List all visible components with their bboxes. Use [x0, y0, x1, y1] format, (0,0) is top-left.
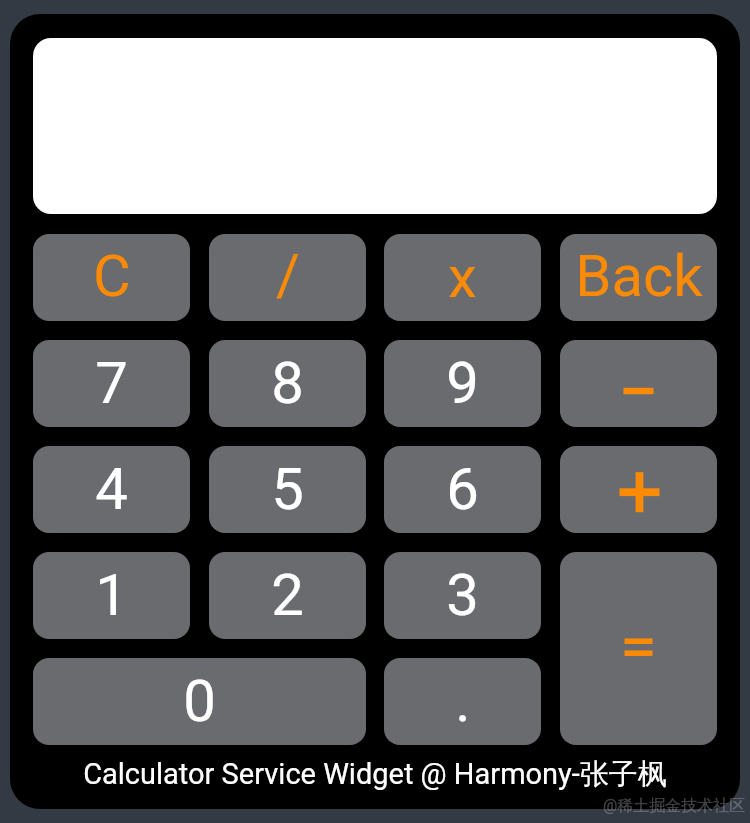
staticText: 8 — [271, 349, 304, 417]
button[interactable]: 8 — [209, 340, 366, 427]
staticText: Calculator Service Widget @ Harmony-张子枫 — [83, 756, 667, 793]
staticText: 7 — [95, 349, 128, 417]
staticText: 3 — [446, 561, 479, 629]
staticText: 0 — [183, 667, 216, 735]
button[interactable]: / — [209, 234, 366, 321]
button[interactable]: 1 — [33, 552, 190, 639]
button[interactable]: 6 — [384, 446, 541, 533]
button[interactable]: 2 — [209, 552, 366, 639]
staticText: 6 — [446, 455, 479, 523]
staticText: @稀土掘金技术社区 — [603, 796, 746, 816]
button[interactable]: 7 — [33, 340, 190, 427]
button[interactable]: Minus — [560, 340, 717, 427]
staticText: x — [448, 243, 477, 311]
staticText: 4 — [95, 455, 128, 523]
button[interactable]: 0 — [33, 658, 366, 745]
button[interactable]: 5 — [209, 446, 366, 533]
button[interactable]: C — [33, 234, 190, 321]
staticText: C — [93, 242, 131, 310]
button[interactable]: Back — [560, 234, 717, 321]
staticText: 1 — [95, 561, 128, 629]
button[interactable]: 3 — [384, 552, 541, 639]
button[interactable]: Plus — [560, 446, 717, 533]
staticText: / — [276, 241, 300, 309]
button[interactable]: Result display — [33, 38, 717, 214]
staticText: . — [455, 667, 471, 735]
button[interactable]: 4 — [33, 446, 190, 533]
button[interactable]: x — [384, 234, 541, 321]
button[interactable]: Equals — [560, 552, 717, 745]
button[interactable]: . — [384, 658, 541, 745]
staticText: Back — [575, 242, 703, 310]
staticText: 5 — [271, 455, 304, 523]
button[interactable]: 9 — [384, 340, 541, 427]
staticText: 2 — [271, 561, 304, 629]
staticText: 9 — [446, 349, 479, 417]
